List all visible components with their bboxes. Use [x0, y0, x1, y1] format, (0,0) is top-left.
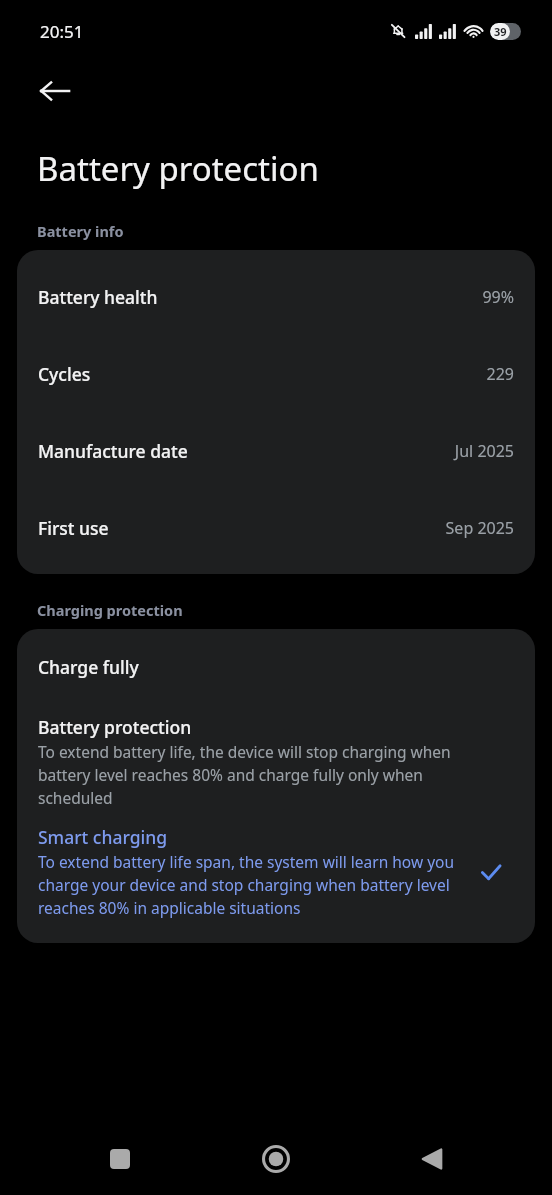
- staticText: Battery protection: [37, 146, 319, 191]
- staticText: Manufacture date: [38, 439, 188, 463]
- staticText: Battery protection: [38, 715, 192, 739]
- button[interactable]: Battery health: [17, 258, 535, 335]
- button[interactable]: Smart charging: [17, 815, 535, 925]
- button[interactable]: Home: [240, 1123, 312, 1195]
- staticText: 229: [486, 363, 514, 385]
- staticText: 20:51: [40, 20, 84, 43]
- staticText: Smart charging: [38, 825, 168, 849]
- staticText: 39: [494, 24, 507, 39]
- staticText: Battery info: [37, 221, 124, 241]
- staticText: Sep 2025: [445, 517, 514, 539]
- staticText: Battery health: [38, 285, 158, 309]
- button[interactable]: Manufacture date: [17, 412, 535, 489]
- button[interactable]: Back: [22, 62, 88, 120]
- button[interactable]: Cycles: [17, 335, 535, 412]
- staticText: 99%: [482, 286, 514, 308]
- staticText: To extend battery life span, the system …: [38, 851, 465, 919]
- staticText: First use: [38, 516, 109, 540]
- button[interactable]: Back: [396, 1123, 468, 1195]
- button[interactable]: Battery protection: [17, 705, 535, 815]
- staticText: To extend battery life, the device will …: [38, 741, 465, 809]
- staticText: Charging protection: [37, 600, 183, 620]
- button[interactable]: First use: [17, 489, 535, 566]
- button[interactable]: Recents: [84, 1123, 156, 1195]
- staticText: Cycles: [38, 362, 91, 386]
- button[interactable]: Charge fully: [17, 629, 535, 705]
- staticText: Charge fully: [38, 655, 139, 679]
- staticText: Jul 2025: [454, 440, 514, 462]
